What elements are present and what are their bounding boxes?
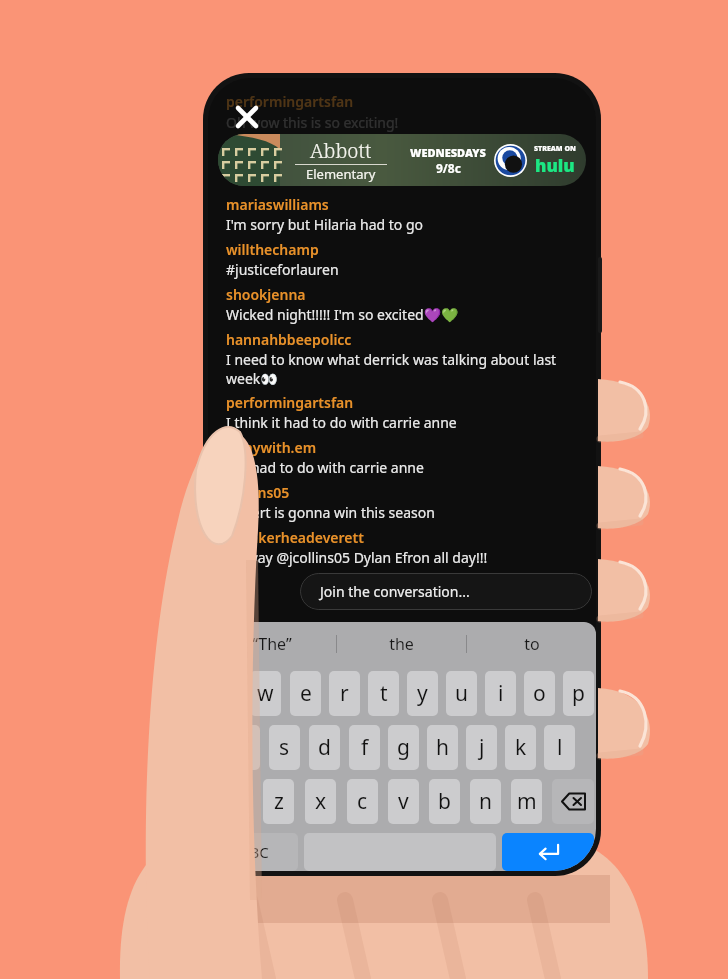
staticText: jcollins05 [226, 483, 290, 502]
staticText: m [517, 787, 537, 816]
staticText: f [361, 733, 369, 762]
staticText: a [239, 733, 251, 762]
staticText: n [479, 787, 492, 816]
staticText: Abbott [310, 137, 372, 164]
button[interactable]: i [485, 671, 516, 716]
button[interactable]: performingartsfan [226, 393, 578, 432]
staticText: willthechamp [226, 240, 319, 259]
button[interactable]: shookjenna [226, 285, 578, 324]
button[interactable]: v [388, 779, 419, 824]
button[interactable]: Close [230, 100, 264, 134]
staticText: the [389, 633, 414, 655]
staticText: i [498, 679, 504, 708]
staticText: u [455, 679, 468, 708]
staticText: e [300, 679, 312, 708]
staticText: k [515, 733, 527, 762]
staticText: Robert is gonna win this season [226, 503, 435, 522]
button[interactable]: Abbott [218, 134, 586, 186]
staticText: WEDNESDAYS [410, 145, 486, 160]
staticText: 9/8c [436, 160, 461, 176]
button[interactable]: f [349, 725, 380, 770]
button[interactable]: g [388, 725, 419, 770]
button[interactable]: z [263, 779, 294, 824]
staticText: I'm sorry but Hilaria had to go [226, 215, 424, 234]
staticText: I think it had to do with carrie anne [226, 413, 457, 432]
button[interactable]: c [347, 779, 378, 824]
staticText: swaywith.em [226, 438, 317, 457]
button[interactable]: the [337, 622, 466, 666]
button[interactable]: Backspace [552, 779, 594, 824]
staticText: hulu [535, 154, 575, 177]
staticText: “The” [252, 633, 292, 655]
button[interactable]: sneakerheadeverett [226, 528, 578, 567]
staticText: I need to know what derrick was talking … [226, 350, 578, 388]
staticText: shookjenna [226, 285, 306, 304]
button[interactable]: hannahbbeepolicc [226, 330, 578, 388]
staticText: p [572, 679, 585, 708]
staticText: #justiceforlauren [226, 260, 339, 279]
staticText: d [318, 733, 331, 762]
button[interactable]: j [466, 725, 497, 770]
button[interactable]: t [368, 671, 399, 716]
button[interactable]: willthechamp [226, 240, 578, 279]
button[interactable]: r [329, 671, 360, 716]
button[interactable]: a [229, 725, 260, 770]
button[interactable]: e [290, 671, 321, 716]
button[interactable]: to [467, 622, 596, 666]
staticText: s [279, 733, 290, 762]
staticText: hannahbbeepolicc [226, 330, 352, 349]
button[interactable]: l [544, 725, 575, 770]
staticText: g [397, 733, 410, 762]
button[interactable]: m [511, 779, 542, 824]
button[interactable]: x [305, 779, 336, 824]
staticText: sneakerheadeverett [226, 528, 364, 547]
staticText: x [315, 787, 327, 816]
staticText: z [274, 787, 284, 816]
staticText: t [380, 679, 388, 708]
button[interactable]: mariaswilliams [226, 195, 578, 234]
button[interactable]: w [250, 671, 281, 716]
button[interactable]: k [505, 725, 536, 770]
staticText: v [398, 787, 409, 816]
staticText: l [557, 733, 563, 762]
button[interactable]: ABC [210, 833, 298, 871]
button[interactable]: “The” [208, 622, 336, 666]
button[interactable]: s [269, 725, 300, 770]
staticText: Join the conversation... [320, 582, 470, 601]
button[interactable]: b [429, 779, 460, 824]
button[interactable]: u [446, 671, 477, 716]
staticText: c [357, 787, 368, 816]
button[interactable]: jcollins05 [226, 483, 578, 522]
staticText: r [340, 679, 349, 708]
button[interactable]: Return [502, 833, 594, 871]
button[interactable]: y [407, 671, 438, 716]
staticText: to [524, 633, 540, 655]
staticText: no way @jcollins05 Dylan Efron all day!!… [226, 548, 488, 567]
button[interactable]: n [470, 779, 501, 824]
staticText: Wicked night!!!!! I'm so excited💜💚 [226, 305, 459, 324]
staticText: Oh wow this is so exciting! [226, 113, 399, 132]
button[interactable]: Join the conversation... [300, 573, 592, 610]
staticText: performingartsfan [226, 92, 354, 111]
staticText: w [257, 679, 274, 708]
button[interactable]: d [309, 725, 340, 770]
button[interactable]: swaywith.em [226, 438, 578, 477]
staticText: h [436, 733, 449, 762]
button[interactable]: h [427, 725, 458, 770]
button[interactable]: o [524, 671, 555, 716]
staticText: y [417, 679, 428, 708]
button[interactable]: p [563, 671, 594, 716]
staticText: Elementary [306, 165, 376, 183]
staticText: o [533, 679, 546, 708]
staticText: ABC [240, 842, 269, 862]
staticText: performingartsfan [226, 393, 354, 412]
staticText: mariaswilliams [226, 195, 329, 214]
staticText: def had to do with carrie anne [226, 458, 424, 477]
staticText: STREAM ON [534, 144, 576, 154]
staticText: j [479, 733, 485, 762]
staticText: b [438, 787, 451, 816]
